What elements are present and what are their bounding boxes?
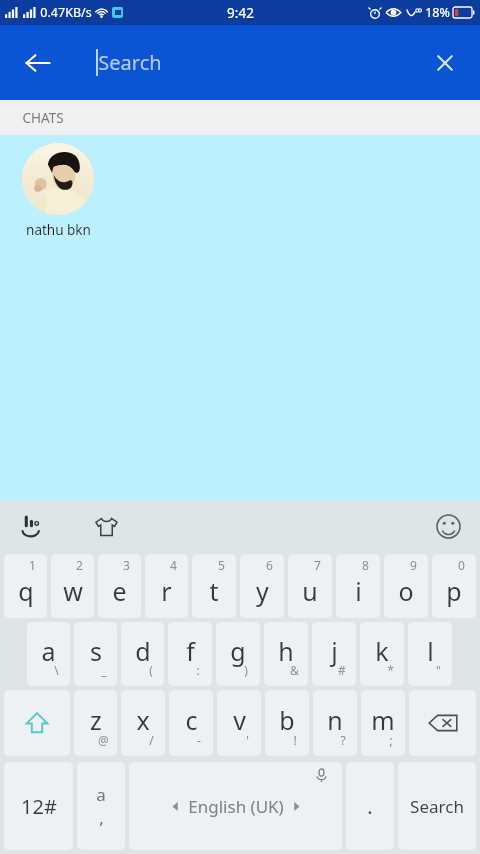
staticText: m [371, 703, 395, 737]
staticText: c [185, 703, 198, 737]
staticText: 18% [425, 4, 450, 21]
staticText: ! [293, 732, 297, 748]
staticText: ? [340, 732, 346, 748]
button[interactable]: b [265, 690, 309, 756]
staticText: / [149, 732, 154, 748]
staticText: z [90, 703, 102, 737]
staticText: e [112, 574, 127, 608]
staticText: 3 [123, 557, 130, 573]
button[interactable]: c [169, 690, 213, 756]
staticText: CHATS [22, 109, 64, 127]
staticText: g [230, 634, 246, 668]
staticText: x [136, 703, 150, 737]
button[interactable]: Back [14, 39, 62, 87]
button[interactable]: n [313, 690, 357, 756]
staticText: d [135, 634, 151, 668]
button[interactable]: o [384, 554, 428, 618]
staticText: 0 [458, 557, 465, 573]
staticText: \ [54, 662, 59, 678]
staticText: & [290, 662, 299, 678]
staticText: r [161, 574, 172, 608]
staticText: : [196, 662, 200, 678]
button[interactable]: Themes [86, 506, 126, 546]
staticText: ( [149, 662, 153, 678]
button[interactable]: x [121, 690, 165, 756]
button[interactable]: k [360, 622, 404, 686]
button[interactable]: e [98, 554, 141, 618]
button[interactable]: f [168, 622, 212, 686]
staticText: j [331, 634, 338, 668]
button[interactable]: Close search [422, 40, 468, 86]
button[interactable]: q [4, 554, 47, 618]
staticText: 2 [76, 557, 83, 573]
button[interactable]: . [346, 762, 394, 850]
staticText: _ [101, 662, 107, 678]
button[interactable]: z [74, 690, 117, 756]
button[interactable]: i [336, 554, 380, 618]
staticText: v [233, 703, 246, 737]
staticText: a [41, 634, 56, 668]
staticText: # [338, 662, 346, 678]
staticText: @ [98, 732, 109, 748]
staticText: s [90, 634, 102, 668]
button[interactable]: l [408, 622, 452, 686]
staticText: English (UK) [188, 795, 284, 818]
button[interactable]: a [77, 762, 125, 850]
staticText: . [367, 793, 373, 820]
staticText: 12# [21, 793, 57, 820]
button[interactable]: 12# [4, 762, 73, 850]
staticText: n [327, 703, 343, 737]
button[interactable]: p [432, 554, 476, 618]
staticText: ' [246, 732, 249, 748]
staticText: 4 [170, 557, 177, 573]
staticText: 8 [362, 557, 369, 573]
staticText: w [63, 574, 83, 608]
staticText: , [99, 806, 104, 829]
button[interactable]: Search [398, 762, 476, 850]
button[interactable]: s [74, 622, 117, 686]
staticText: 9 [410, 557, 417, 573]
staticText: i [355, 574, 362, 608]
button[interactable]: w [51, 554, 94, 618]
staticText: 1 [29, 557, 36, 573]
staticText: ; [389, 732, 393, 748]
staticText: a [96, 783, 106, 806]
button[interactable]: h [264, 622, 308, 686]
button[interactable]: nathu bkn [14, 143, 102, 239]
staticText: 9:42 [227, 4, 254, 22]
button[interactable]: Shift [4, 690, 70, 756]
button[interactable]: Space [129, 762, 342, 850]
staticText: 5 [218, 557, 225, 573]
button[interactable]: g [216, 622, 260, 686]
button[interactable]: Backspace [409, 690, 476, 756]
staticText: o [398, 574, 414, 608]
staticText: 0.47KB/s [40, 4, 92, 21]
button[interactable]: m [361, 690, 405, 756]
staticText: t [209, 574, 219, 608]
staticText: u [302, 574, 318, 608]
staticText: ) [244, 662, 248, 678]
staticText: * [387, 662, 394, 678]
staticText: Search [98, 49, 162, 76]
button[interactable]: a [27, 622, 70, 686]
button[interactable]: r [145, 554, 188, 618]
staticText: 6 [266, 557, 273, 573]
staticText: k [375, 634, 389, 668]
staticText: l [427, 634, 434, 668]
staticText: Search [410, 795, 464, 818]
staticText: - [197, 732, 201, 748]
staticText: y [256, 574, 269, 608]
button[interactable]: t [192, 554, 236, 618]
staticText: h [278, 634, 294, 668]
button[interactable]: v [217, 690, 261, 756]
button[interactable]: j [312, 622, 356, 686]
staticText: q [18, 574, 34, 608]
button[interactable]: d [121, 622, 164, 686]
staticText: nathu bkn [26, 221, 91, 239]
staticText: b [279, 703, 295, 737]
button[interactable]: Emoji [428, 506, 468, 546]
button[interactable]: TouchPal menu [12, 506, 52, 546]
button[interactable]: u [288, 554, 332, 618]
button[interactable]: y [240, 554, 284, 618]
staticText: f [186, 634, 195, 668]
